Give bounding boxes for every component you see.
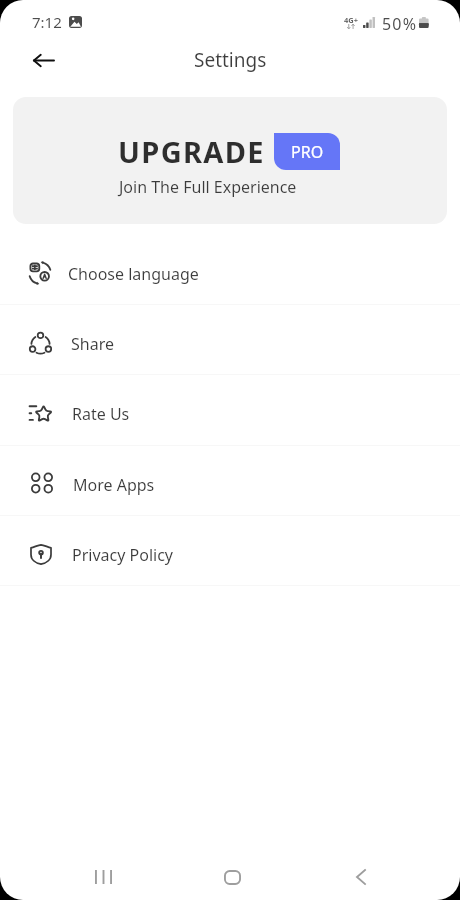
- button[interactable]: More Apps: [0, 445, 460, 515]
- button[interactable]: Back: [337, 853, 385, 900]
- button[interactable]: Share: [0, 304, 460, 374]
- staticText: Share: [71, 333, 114, 355]
- staticText: Rate Us: [72, 403, 130, 425]
- staticText: UPGRADE: [118, 132, 265, 171]
- button[interactable]: Privacy Policy: [0, 515, 460, 585]
- button[interactable]: Back: [21, 38, 66, 83]
- staticText: 7:12: [32, 12, 62, 32]
- staticText: More Apps: [73, 474, 155, 496]
- staticText: Privacy Policy: [72, 544, 173, 566]
- staticText: Settings: [194, 47, 267, 73]
- staticText: 50%: [382, 13, 418, 35]
- staticText: Join The Full Experience: [119, 176, 297, 198]
- button[interactable]: Choose language: [0, 234, 460, 304]
- button[interactable]: Recent apps: [79, 853, 127, 900]
- staticText: PRO: [291, 141, 324, 163]
- button[interactable]: Rate Us: [0, 374, 460, 444]
- staticText: 4G+: [344, 15, 359, 25]
- staticText: Choose language: [68, 263, 199, 285]
- button[interactable]: Home: [208, 853, 256, 900]
- button[interactable]: UPGRADE: [13, 97, 447, 224]
